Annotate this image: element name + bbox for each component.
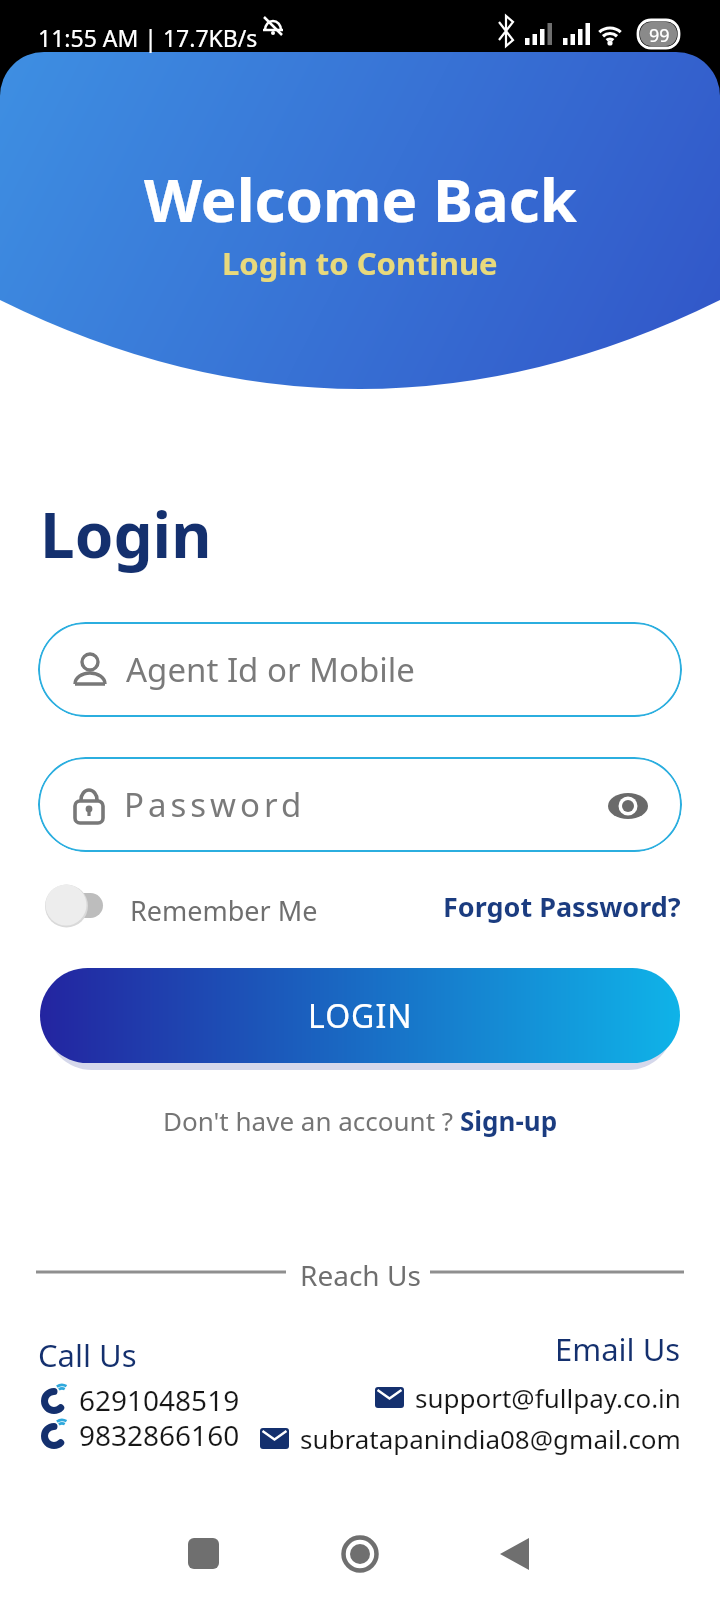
staticText: Password [124,782,306,827]
button[interactable]: Password [38,757,682,852]
staticText: 99 [649,23,670,48]
staticText: Remember Me [130,892,318,929]
staticText: Login to Continue [222,242,498,284]
staticText: Don't have an account ? [163,1103,460,1138]
button[interactable]: 9832866160 [40,1416,240,1454]
staticText: Welcome Back [144,158,577,240]
button[interactable]: LOGIN [40,968,680,1063]
button[interactable] [44,884,114,928]
staticText: Agent Id or Mobile [126,647,415,692]
staticText: subratapanindia08@gmail.com [300,1421,681,1456]
staticText: 11:55 AM | 17.7KB/s [38,22,258,53]
staticText: Reach Us [300,1256,421,1294]
button[interactable]: Agent Id or Mobile [38,622,682,717]
button[interactable]: 6291048519 [40,1381,240,1419]
staticText: Login [40,492,212,576]
button[interactable] [606,783,650,827]
button[interactable]: subratapanindia08@gmail.com [260,1421,681,1456]
staticText: 6291048519 [79,1381,240,1419]
button[interactable]: Sign-up [460,1103,558,1138]
button[interactable]: support@fullpay.co.in [375,1380,681,1415]
staticText: support@fullpay.co.in [415,1380,681,1415]
staticText: Email Us [555,1328,681,1370]
button[interactable] [0,1530,720,1580]
button[interactable]: Forgot Password? [443,888,681,925]
staticText: Call Us [38,1334,137,1376]
staticText: 9832866160 [79,1416,240,1454]
staticText: LOGIN [308,994,413,1038]
